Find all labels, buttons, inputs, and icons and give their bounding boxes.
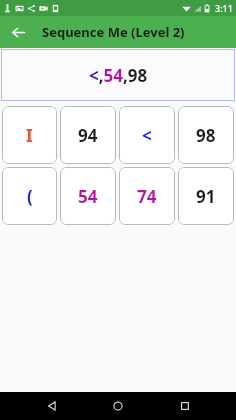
staticText: 98: [196, 124, 216, 147]
button[interactable]: Home: [103, 392, 133, 420]
staticText: Sequence Me (Level 2): [42, 23, 185, 41]
staticText: 74: [137, 185, 157, 208]
button[interactable]: (: [2, 167, 57, 225]
button[interactable]: 98: [178, 106, 234, 164]
button[interactable]: <: [119, 106, 175, 164]
button[interactable]: Back: [37, 392, 67, 420]
button[interactable]: Recent apps: [170, 392, 200, 420]
button[interactable]: I: [2, 106, 57, 164]
staticText: (: [27, 185, 33, 208]
staticText: 94: [78, 124, 98, 147]
staticText: <,54,98: [89, 64, 148, 87]
staticText: 91: [196, 185, 216, 208]
staticText: 54: [78, 185, 98, 208]
button[interactable]: 94: [60, 106, 116, 164]
staticText: 3:11: [215, 2, 233, 14]
button[interactable]: 74: [119, 167, 175, 225]
button[interactable]: Back: [4, 18, 32, 46]
button[interactable]: 54: [60, 167, 116, 225]
button[interactable]: 91: [178, 167, 234, 225]
staticText: I: [26, 124, 33, 147]
staticText: <: [142, 124, 152, 147]
